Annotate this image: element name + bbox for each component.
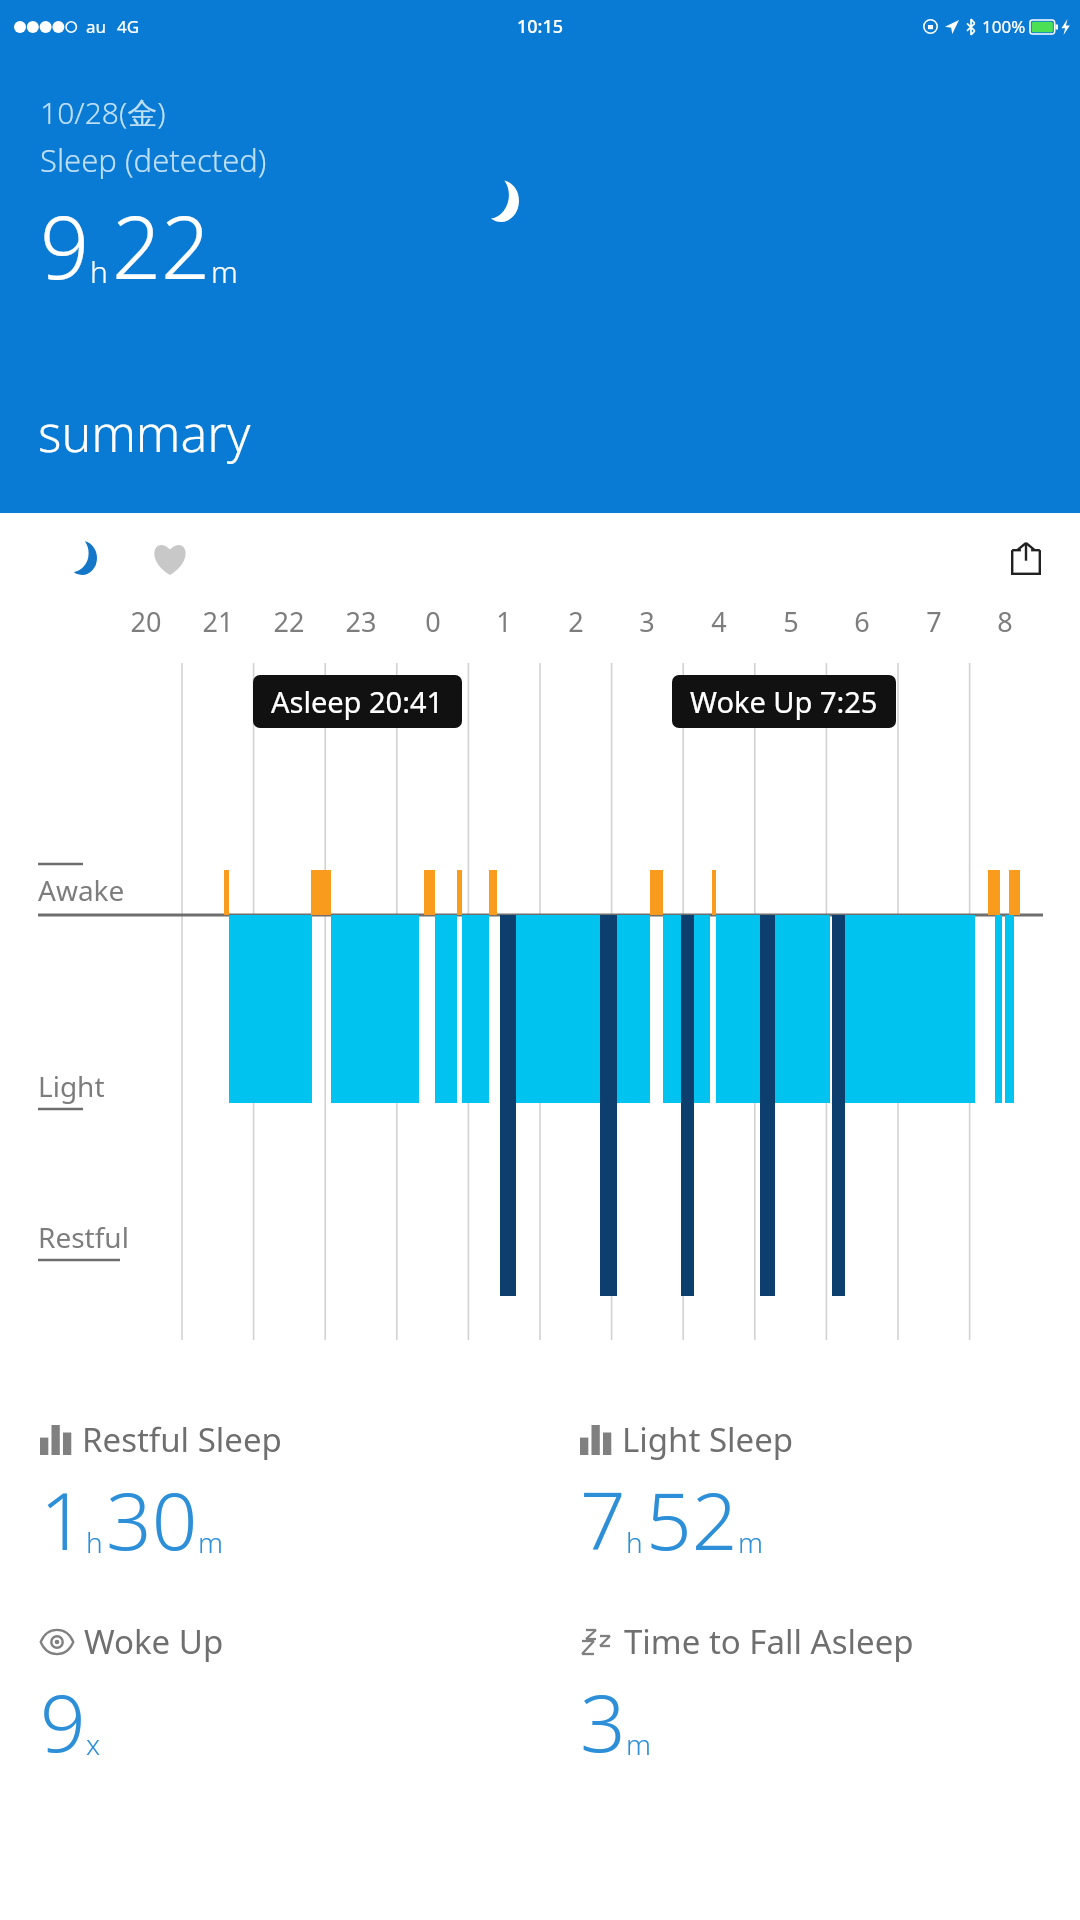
staticText: x (86, 1725, 101, 1763)
staticText: h (626, 1523, 643, 1561)
staticText: 3 (580, 1666, 626, 1775)
button[interactable]: Sleep (50, 526, 114, 590)
staticText: Woke Up 7:25 (690, 682, 878, 721)
staticText: 5 (767, 603, 815, 640)
button[interactable]: Asleep 20:41 (253, 675, 462, 728)
staticText: Time to Fall Asleep (624, 1619, 914, 1664)
staticText: Light Sleep (622, 1417, 794, 1462)
staticText: Awake (38, 871, 125, 909)
staticText: 10/28(金) (40, 92, 166, 133)
staticText: 10:15 (517, 14, 564, 39)
staticText: 6 (838, 603, 886, 640)
staticText: m (211, 251, 238, 292)
staticText: 100% (982, 15, 1026, 38)
staticText: 4 (695, 603, 743, 640)
staticText: Woke Up (84, 1619, 224, 1664)
button[interactable]: Time to Fall Asleep (540, 1619, 1080, 1775)
staticText: 9 (40, 187, 90, 304)
staticText: au (86, 15, 107, 38)
staticText: h (86, 1523, 103, 1561)
staticText: 7 (580, 1464, 626, 1573)
staticText: 22 (265, 603, 313, 640)
staticText: Restful Sleep (82, 1417, 282, 1462)
staticText: 9 (40, 1666, 86, 1775)
staticText: 0 (409, 603, 457, 640)
staticText: Light (38, 1067, 105, 1105)
staticText: 1 (40, 1464, 86, 1573)
staticText: 7 (910, 603, 958, 640)
staticText: 52 (646, 1464, 738, 1573)
staticText: 1 (480, 603, 528, 640)
staticText: h (90, 251, 108, 292)
staticText: m (198, 1523, 224, 1561)
staticText: 4G (117, 15, 140, 38)
button[interactable]: Woke Up (0, 1619, 540, 1775)
staticText: Sleep (detected) (40, 139, 267, 181)
staticText: 8 (981, 603, 1029, 640)
staticText: 3 (623, 603, 671, 640)
staticText: summary (38, 399, 251, 467)
button[interactable]: Heart rate (138, 526, 202, 590)
staticText: 2 (552, 603, 600, 640)
button[interactable]: Woke Up 7:25 (672, 675, 896, 728)
staticText: m (738, 1523, 764, 1561)
button[interactable]: Restful Sleep (0, 1417, 540, 1573)
staticText: Restful (38, 1218, 129, 1256)
button[interactable]: Light Sleep (540, 1417, 1080, 1573)
staticText: 30 (106, 1464, 198, 1573)
staticText: 20 (122, 603, 170, 640)
staticText: 21 (194, 603, 242, 640)
button[interactable]: Share (992, 524, 1060, 592)
staticText: 22 (112, 187, 211, 304)
staticText: m (626, 1725, 652, 1763)
staticText: 23 (337, 603, 385, 640)
staticText: Asleep 20:41 (271, 682, 444, 721)
